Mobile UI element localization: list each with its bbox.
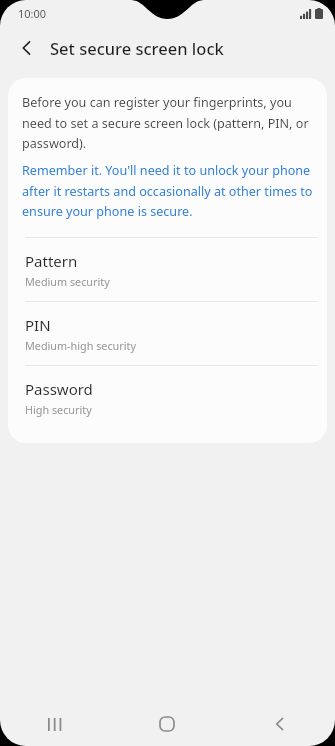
staticText: 10:00: [18, 6, 47, 21]
button[interactable]: Back: [8, 29, 46, 67]
staticText: Password: [25, 379, 93, 399]
staticText: Medium security: [25, 274, 110, 289]
staticText: High security: [25, 402, 92, 417]
staticText: Set secure screen lock: [50, 37, 224, 59]
button[interactable]: Password: [8, 366, 327, 429]
staticText: PIN: [25, 315, 51, 335]
staticText: Remember it. You'll need it to unlock yo…: [22, 162, 313, 219]
button[interactable]: Recent apps: [0, 702, 111, 746]
staticText: Medium-high security: [25, 338, 136, 353]
staticText: Pattern: [25, 251, 78, 271]
button[interactable]: PIN: [8, 302, 327, 365]
button[interactable]: Home: [111, 702, 223, 746]
button[interactable]: Back: [223, 702, 335, 746]
staticText: Before you can register your fingerprint…: [22, 94, 313, 151]
button[interactable]: Pattern: [8, 238, 327, 301]
